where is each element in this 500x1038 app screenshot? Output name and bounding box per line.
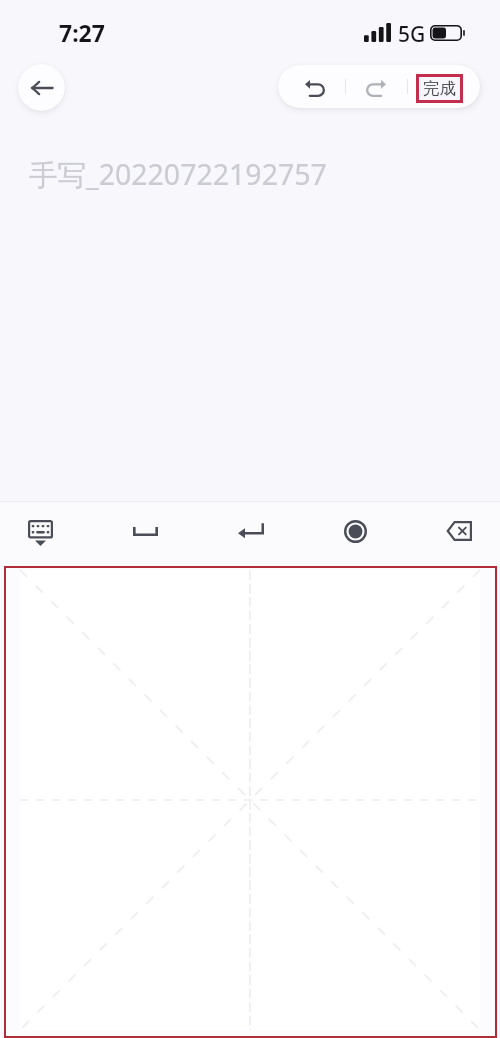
button[interactable]: Keyboard	[8, 502, 72, 560]
button[interactable]: Handwriting mode	[323, 502, 387, 560]
button[interactable]: Space	[113, 502, 177, 560]
staticText: 5G	[398, 20, 426, 49]
staticText: 完成	[423, 78, 456, 99]
button[interactable]: Redo	[346, 65, 407, 108]
button[interactable]: 完成	[408, 65, 480, 108]
button[interactable]: Undo	[278, 65, 345, 108]
staticText: 手写_20220722192757	[29, 155, 327, 194]
button[interactable]: Backspace	[427, 502, 491, 560]
button[interactable]: Back	[18, 64, 65, 111]
staticText: 7:27	[59, 17, 105, 48]
button[interactable]: Enter	[219, 502, 283, 560]
